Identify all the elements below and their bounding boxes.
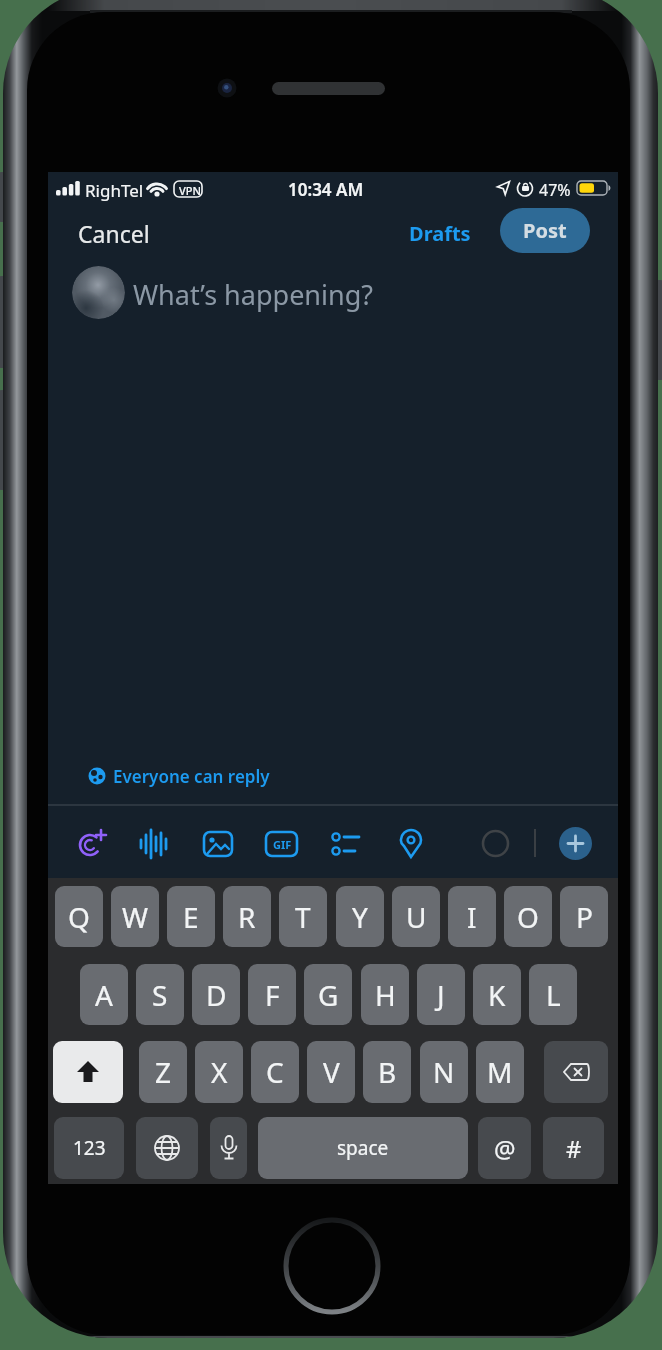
staticText: K [488,976,506,1014]
button[interactable]: P [560,886,608,947]
button[interactable]: V [307,1041,355,1103]
staticText: 47% [539,179,571,201]
button[interactable]: U [392,886,440,947]
staticText: O [517,898,539,936]
button[interactable]: W [111,886,159,947]
button[interactable] [559,827,592,860]
staticText: Drafts [409,220,471,247]
staticText: P [576,898,593,936]
button[interactable]: Y [336,886,384,947]
button[interactable]: G [304,964,352,1025]
button[interactable]: C [251,1041,299,1103]
staticText: space [337,1135,389,1161]
staticText: F [265,976,280,1014]
button[interactable] [210,1117,247,1179]
button[interactable]: Cancel [68,214,188,252]
button[interactable]: Post [500,208,590,253]
button[interactable]: L [529,964,577,1025]
staticText: D [206,976,227,1014]
button[interactable] [75,827,109,861]
staticText: Everyone can reply [113,765,270,788]
button[interactable] [329,827,363,861]
staticText: @ [494,1132,516,1165]
staticText: Y [352,898,368,936]
staticText: Post [523,217,567,244]
staticText: X [211,1053,228,1091]
staticText: GIF [273,837,292,852]
staticText: G [318,976,339,1014]
staticText: S [152,976,168,1014]
button[interactable]: GIF [264,827,300,861]
button[interactable]: N [420,1041,468,1103]
staticText: V [323,1053,340,1091]
button[interactable]: B [363,1041,411,1103]
staticText: 123 [73,1135,106,1161]
staticText: # [566,1132,582,1165]
staticText: T [295,898,311,936]
button[interactable] [136,1117,198,1179]
button[interactable]: K [473,964,521,1025]
button[interactable] [137,827,171,861]
staticText: C [266,1053,284,1091]
button[interactable]: I [448,886,496,947]
button[interactable]: S [136,964,184,1025]
button[interactable]: # [543,1117,604,1179]
staticText: Cancel [78,218,150,249]
button[interactable]: Z [139,1041,187,1103]
staticText: A [95,976,113,1014]
button[interactable] [394,827,428,861]
button[interactable]: 123 [54,1117,124,1179]
button[interactable]: Drafts [408,214,472,252]
button[interactable] [53,1041,123,1103]
button[interactable]: X [195,1041,243,1103]
staticText: B [378,1053,397,1091]
button[interactable]: J [417,964,465,1025]
button[interactable]: D [192,964,240,1025]
staticText: U [406,898,427,936]
button[interactable] [544,1041,608,1103]
staticText: VPN [179,183,202,198]
staticText: Z [155,1053,172,1091]
button[interactable]: F [248,964,296,1025]
button[interactable]: M [476,1041,524,1103]
button[interactable] [78,757,338,793]
button[interactable]: O [504,886,552,947]
staticText: L [546,976,561,1014]
button[interactable]: R [223,886,271,947]
button[interactable]: T [279,886,327,947]
button[interactable]: space [258,1117,468,1179]
button[interactable]: Q [55,886,103,947]
button[interactable] [72,266,125,319]
staticText: J [437,976,445,1014]
button[interactable] [201,827,235,861]
staticText: H [375,976,396,1014]
staticText: Q [68,898,90,936]
staticText: I [467,898,477,936]
staticText: R [238,898,256,936]
button[interactable]: A [80,964,128,1025]
staticText: E [183,898,199,936]
staticText: M [487,1053,513,1091]
staticText: What’s happening? [133,276,374,313]
button[interactable]: @ [478,1117,531,1179]
staticText: W [122,898,149,936]
staticText: 10:34 AM [288,178,364,201]
staticText: RighTel [85,179,144,202]
staticText: N [433,1053,455,1091]
button[interactable]: E [167,886,215,947]
button[interactable]: H [361,964,409,1025]
